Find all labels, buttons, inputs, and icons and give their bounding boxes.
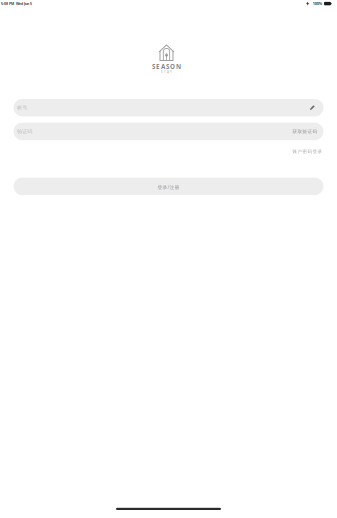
button[interactable]: 登录/注册 xyxy=(13,178,323,195)
staticText: 100% xyxy=(313,1,322,6)
button[interactable]: 账户密码登录 xyxy=(292,149,322,154)
staticText: 登录/注册 xyxy=(157,184,179,190)
staticText: S E A S O N xyxy=(152,62,181,71)
staticText: 获取验证码 xyxy=(292,129,317,134)
staticText: 5:08 PM xyxy=(1,1,14,6)
staticText: Wed Jun 5 xyxy=(16,1,32,6)
button[interactable]: 验证码 xyxy=(13,123,323,140)
staticText: S T A Y xyxy=(161,69,172,74)
staticText: 帐号 xyxy=(17,104,27,111)
button[interactable]: 帐号 xyxy=(13,99,323,116)
staticText: 账户密码登录 xyxy=(292,149,322,154)
staticText: 验证码 xyxy=(17,128,32,135)
